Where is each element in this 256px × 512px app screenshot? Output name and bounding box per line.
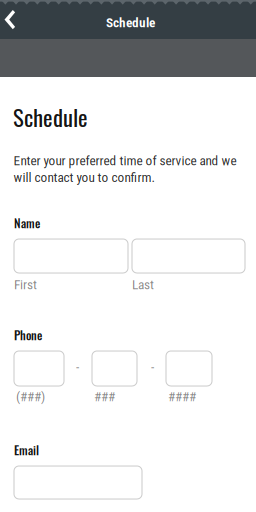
staticText: Enter your preferred time of service and… <box>13 153 236 185</box>
staticText: Last <box>132 277 154 293</box>
staticText: - <box>76 359 79 375</box>
staticText: #### <box>168 389 196 405</box>
staticText: ### <box>94 389 115 405</box>
staticText: - <box>151 359 154 375</box>
staticText: First <box>14 277 37 293</box>
staticText: (###) <box>16 389 45 405</box>
staticText: Schedule <box>106 15 155 31</box>
staticText: Phone <box>14 326 42 344</box>
staticText: Schedule <box>13 100 88 134</box>
staticText: Name <box>14 214 40 232</box>
staticText: Email <box>14 441 39 459</box>
button[interactable]: Back <box>0 5 24 35</box>
